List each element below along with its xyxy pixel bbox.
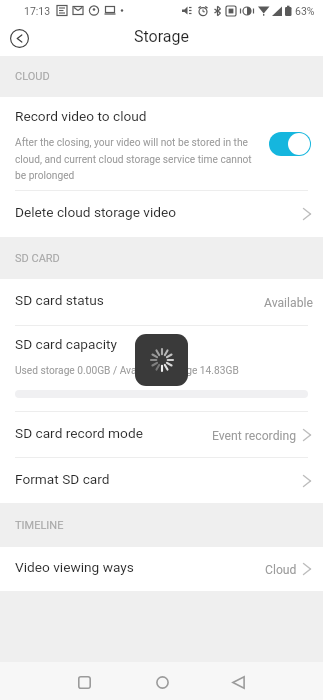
button[interactable]: SD card record mode	[0, 412, 323, 457]
staticText: TIMELINE	[15, 519, 64, 532]
staticText: SD card status	[15, 292, 104, 308]
button[interactable]: SD card status	[0, 279, 323, 325]
button[interactable]: Recents	[62, 663, 106, 700]
staticText: CLOUD	[15, 70, 50, 83]
staticText: 17:13	[24, 5, 51, 17]
staticText: Event recording	[212, 429, 297, 443]
staticText: Video viewing ways	[15, 559, 134, 575]
button[interactable]: Video viewing ways	[0, 547, 323, 591]
button[interactable]: Format SD card	[0, 458, 323, 503]
staticText: Format SD card	[15, 471, 110, 487]
staticText: 63%	[295, 5, 315, 17]
staticText: After the closing, your video will not b…	[15, 137, 263, 181]
staticText: Cloud	[265, 563, 297, 577]
button[interactable]: Delete cloud storage video	[0, 191, 323, 237]
staticText: SD card capacity	[15, 336, 117, 352]
staticText: Delete cloud storage video	[15, 204, 177, 220]
button[interactable]: Record video to cloud toggle	[269, 132, 311, 156]
staticText: Available	[264, 296, 313, 310]
staticText: Storage	[134, 27, 189, 46]
staticText: Record video to cloud	[15, 108, 147, 124]
staticText: Used storage 0.00GB / Available storage …	[15, 365, 239, 377]
staticText: SD CARD	[15, 252, 60, 265]
button[interactable]: SD card capacity	[0, 326, 323, 411]
button[interactable]: Home	[140, 663, 184, 700]
button[interactable]: Record video to cloud	[0, 97, 323, 190]
button[interactable]: Back	[216, 663, 260, 700]
button[interactable]: Back	[4, 23, 34, 53]
staticText: SD card record mode	[15, 425, 143, 441]
